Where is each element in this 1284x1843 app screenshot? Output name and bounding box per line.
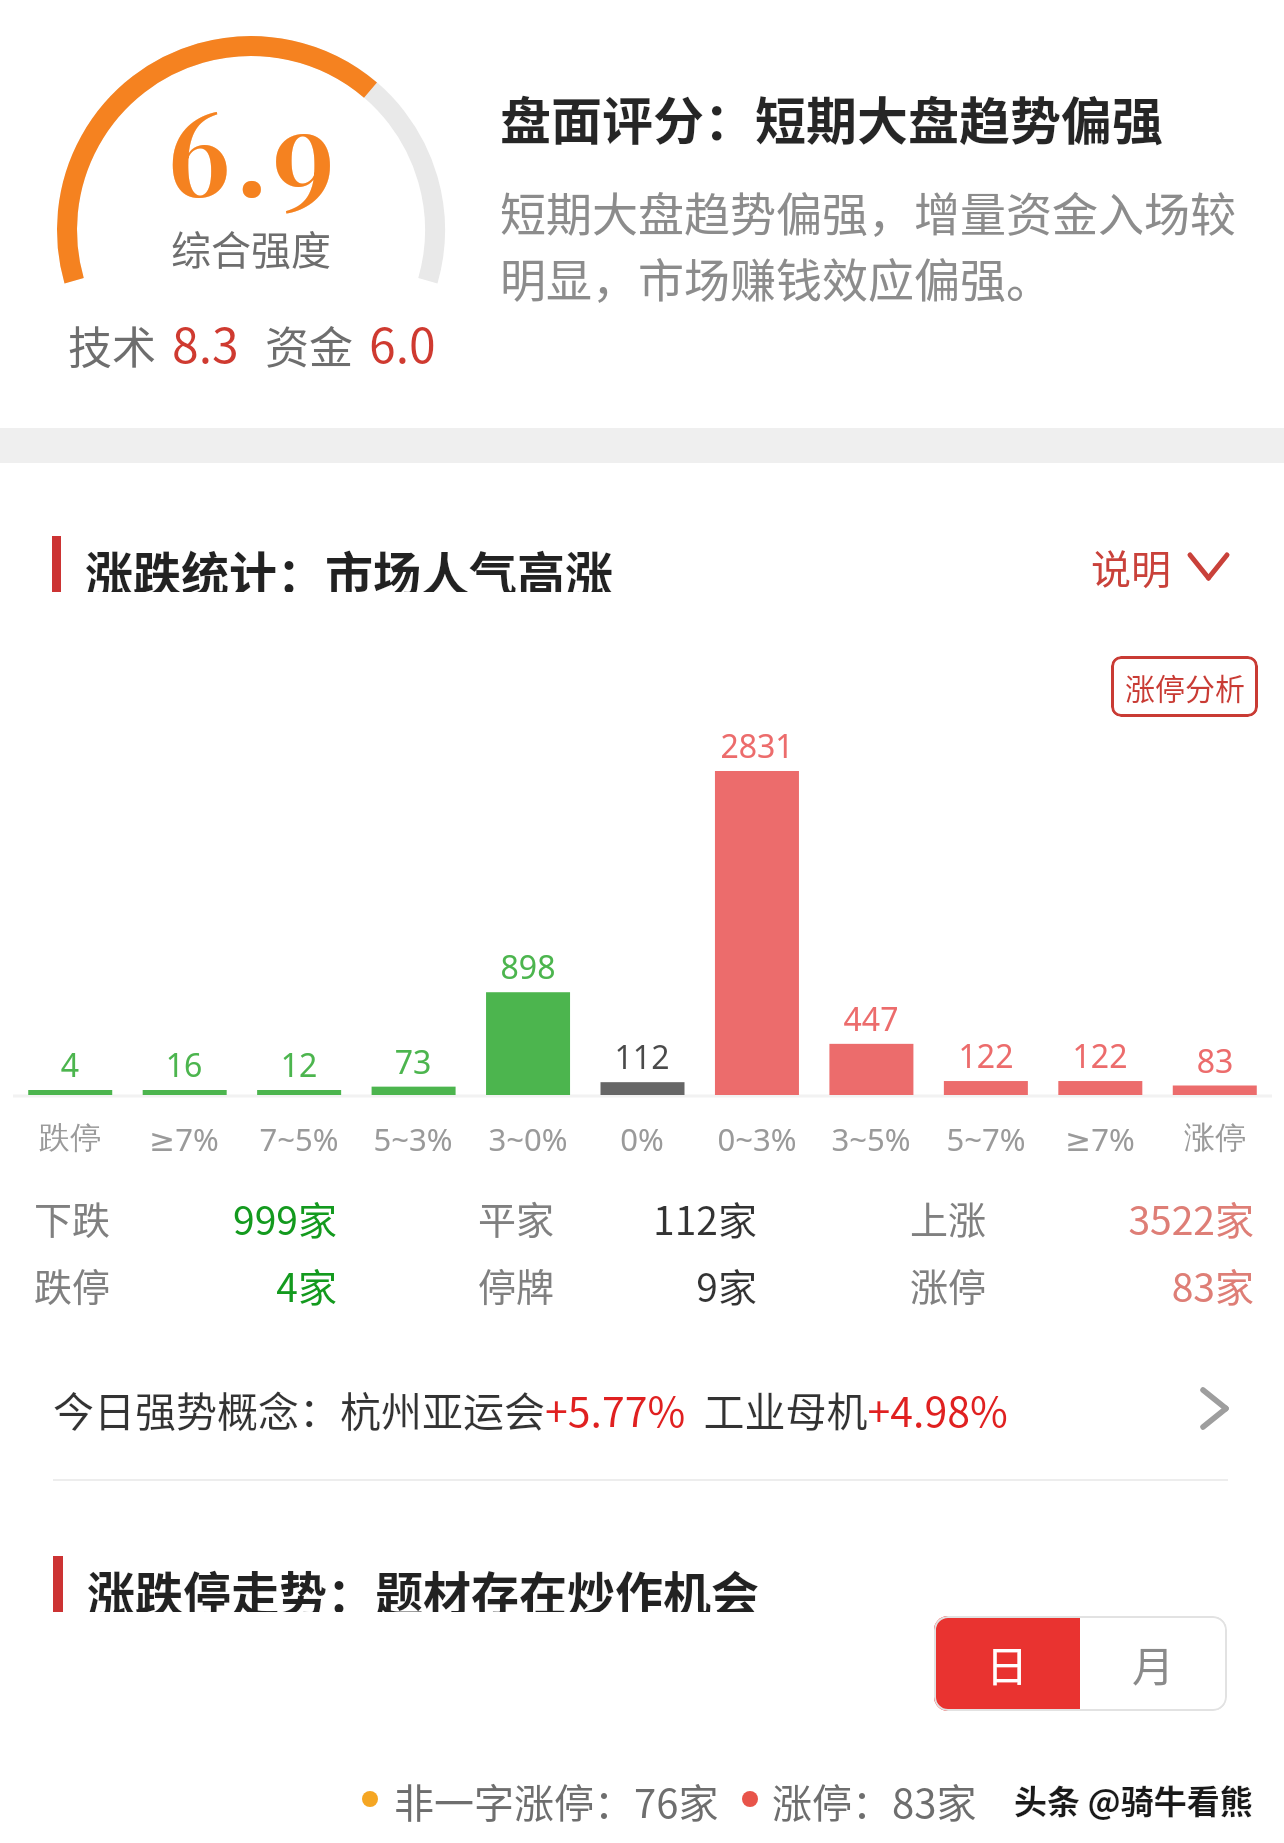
staticText: 2831 <box>700 724 814 768</box>
staticText: 447 <box>814 997 928 1041</box>
staticText: 0~3% <box>700 1118 814 1160</box>
staticText: 短期大盘趋势偏强，增量资金入场较明显，市场赚钱效应偏强。 <box>500 178 1240 310</box>
staticText: 83 <box>1158 1039 1272 1083</box>
staticText: 3~0% <box>471 1118 585 1160</box>
button[interactable]: 说明 <box>1091 538 1229 594</box>
staticText: 112家 <box>427 1190 757 1246</box>
staticText: 今日强势概念：杭州亚运会+5.77% 工业母机+4.98% <box>53 1379 1008 1438</box>
staticText: 6.9 <box>167 70 341 225</box>
staticText: 综合强度 <box>51 219 451 277</box>
staticText: 跌停 <box>34 1257 111 1312</box>
staticText: 说明 <box>1091 538 1171 594</box>
staticText: 4家 <box>7 1257 337 1313</box>
staticText: 涨停 <box>910 1257 987 1312</box>
staticText: 4 <box>13 1043 127 1087</box>
staticText: 上涨 <box>910 1190 987 1245</box>
staticText: 技术 <box>68 313 156 377</box>
staticText: 3~5% <box>814 1118 928 1160</box>
staticText: 涨停分析 <box>1125 665 1245 708</box>
button[interactable]: 涨停：83家 <box>742 1772 977 1826</box>
button[interactable]: 今日强势概念：杭州亚运会+5.77% 工业母机+4.98% <box>0 1366 1284 1450</box>
staticText: 12 <box>242 1043 356 1087</box>
staticText: 0% <box>585 1118 699 1160</box>
staticText: 9家 <box>427 1257 757 1313</box>
button[interactable]: 月 <box>1080 1616 1227 1711</box>
button[interactable]: 日 <box>934 1616 1080 1711</box>
staticText: 平家 <box>478 1190 555 1245</box>
staticText: 跌停 <box>13 1118 127 1157</box>
staticText: 资金 <box>265 313 353 377</box>
staticText: 898 <box>471 945 585 989</box>
staticText: 涨跌统计：市场人气高涨 <box>85 536 614 592</box>
staticText: 999家 <box>7 1190 337 1246</box>
button[interactable]: 涨停分析 <box>1111 656 1258 717</box>
staticText: 日 <box>986 1633 1029 1694</box>
staticText: 83家 <box>924 1257 1254 1313</box>
staticText: 涨停 <box>1158 1118 1272 1157</box>
staticText: 涨停：83家 <box>772 1772 977 1826</box>
staticText: 非一字涨停：76家 <box>394 1772 719 1826</box>
staticText: 5~7% <box>929 1118 1043 1160</box>
staticText: 112 <box>585 1035 699 1079</box>
staticText: 16 <box>127 1043 241 1087</box>
staticText: 涨跌停走势：题材存在炒作机会 <box>87 1556 760 1612</box>
staticText: 122 <box>1043 1034 1157 1078</box>
staticText: ≥7% <box>1043 1118 1157 1160</box>
button[interactable]: 非一字涨停：76家 <box>362 1772 719 1826</box>
staticText: 3522家 <box>924 1190 1254 1246</box>
staticText: 月 <box>1132 1633 1175 1694</box>
staticText: 停牌 <box>478 1257 555 1312</box>
staticText: 122 <box>929 1034 1043 1078</box>
staticText: 7~5% <box>242 1118 356 1160</box>
other: More <box>1200 1387 1229 1430</box>
staticText: 头条 @骑牛看熊 <box>1014 1776 1253 1824</box>
staticText: 8.3 <box>172 307 239 377</box>
staticText: 5~3% <box>356 1118 470 1160</box>
staticText: ≥7% <box>127 1118 241 1160</box>
staticText: 6.0 <box>369 307 436 377</box>
staticText: 盘面评分：短期大盘趋势偏强 <box>500 81 1164 155</box>
staticText: 下跌 <box>34 1190 111 1245</box>
staticText: 73 <box>356 1040 470 1084</box>
